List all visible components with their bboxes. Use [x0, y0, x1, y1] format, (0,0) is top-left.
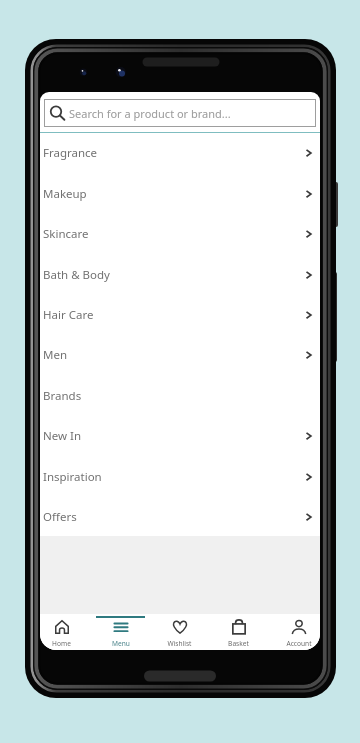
- staticText: Wishlist: [167, 639, 192, 648]
- staticText: Basket: [228, 639, 249, 648]
- button[interactable]: Inspiration: [40, 456, 320, 497]
- button[interactable]: Offers: [40, 497, 320, 536]
- button[interactable]: Basket: [214, 614, 263, 650]
- staticText: Bath & Body: [43, 267, 110, 283]
- button[interactable]: Home: [40, 614, 86, 650]
- button[interactable]: Wishlist: [155, 614, 204, 650]
- button[interactable]: Brands: [40, 375, 320, 416]
- staticText: Account: [286, 639, 312, 648]
- button[interactable]: Account: [274, 614, 320, 650]
- button[interactable]: Bath & Body: [40, 254, 320, 295]
- staticText: Fragrance: [43, 145, 98, 161]
- staticText: Hair Care: [43, 307, 94, 323]
- staticText: Inspiration: [43, 469, 102, 485]
- staticText: Skincare: [43, 226, 89, 242]
- staticText: Men: [43, 347, 68, 363]
- staticText: Offers: [43, 509, 77, 525]
- staticText: Menu: [112, 639, 130, 648]
- button[interactable]: Skincare: [40, 214, 320, 254]
- button[interactable]: Men: [40, 335, 320, 375]
- button[interactable]: Fragrance: [40, 133, 320, 173]
- staticText: New In: [43, 428, 82, 444]
- button[interactable]: Search for a product or brand...: [44, 99, 316, 127]
- button[interactable]: New In: [40, 416, 320, 456]
- button[interactable]: Makeup: [40, 173, 320, 214]
- staticText: Search for a product or brand...: [69, 106, 231, 121]
- staticText: Brands: [43, 388, 82, 404]
- button[interactable]: Menu: [96, 614, 145, 650]
- staticText: Home: [52, 639, 71, 648]
- button[interactable]: Hair Care: [40, 295, 320, 335]
- staticText: Makeup: [43, 186, 87, 202]
